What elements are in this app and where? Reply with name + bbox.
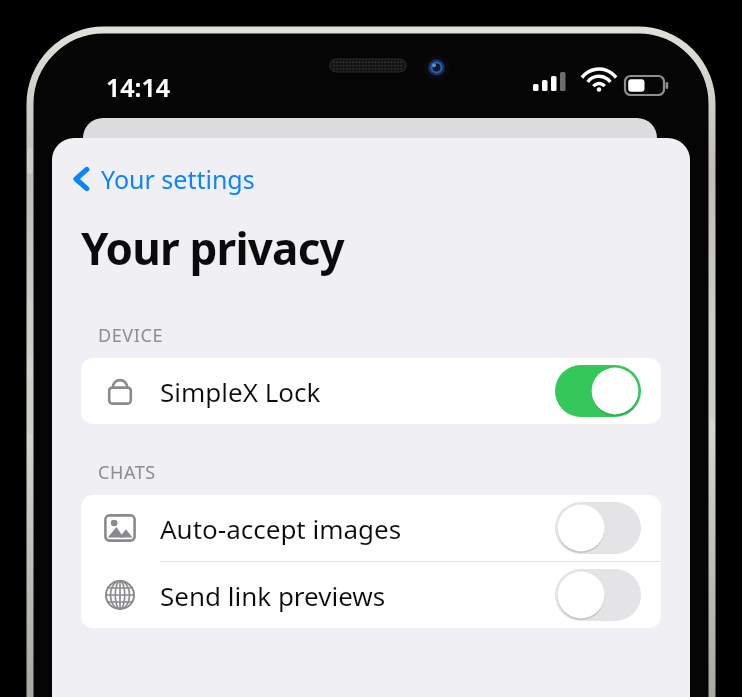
staticText: Send link previews [160,578,555,613]
button[interactable]: Toggle Auto-accept images [555,502,641,554]
button[interactable]: Toggle Send link previews [555,569,641,621]
button[interactable]: Toggle SimpleX Lock [555,365,641,417]
staticText: CHATS [98,460,156,485]
staticText: Your settings [101,162,255,196]
staticText: Your privacy [81,218,344,278]
button[interactable]: SimpleX Lock [81,358,661,424]
staticText: Auto-accept images [160,511,555,546]
staticText: SimpleX Lock [160,374,555,409]
button[interactable]: Send link previews [81,562,661,628]
staticText: DEVICE [98,323,164,348]
button[interactable]: Auto-accept images [81,495,661,561]
button[interactable]: Your settings [66,158,261,200]
staticText: 14:14 [106,70,171,104]
